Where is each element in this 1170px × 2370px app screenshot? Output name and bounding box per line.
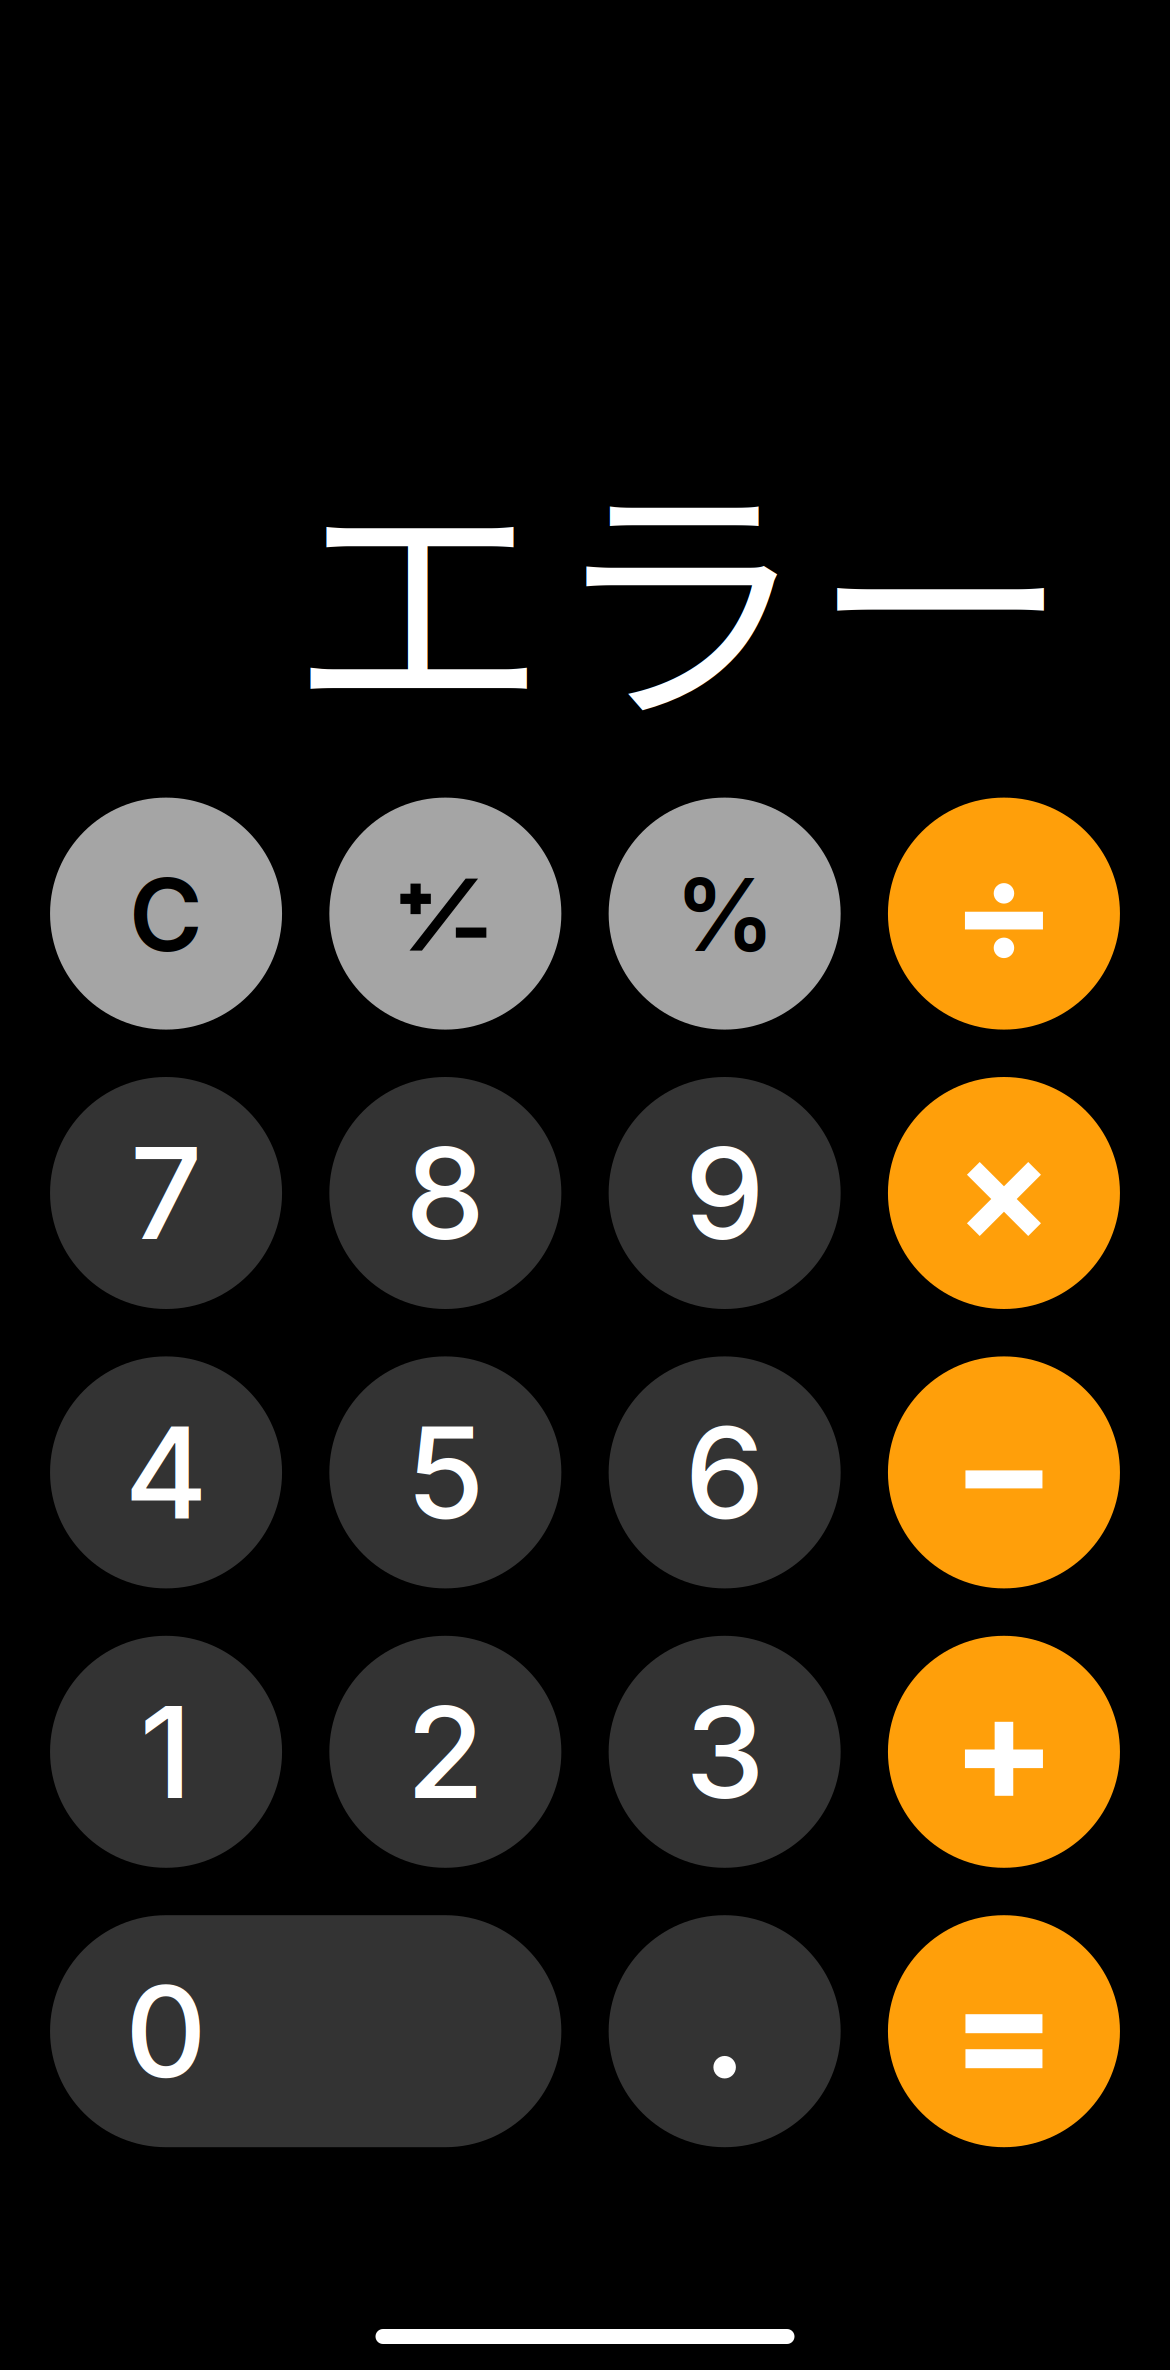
button[interactable]: 4 <box>50 1356 282 1588</box>
button[interactable]: Equals <box>888 1915 1120 2147</box>
button[interactable]: Plus minus <box>329 798 561 1030</box>
staticText: 6 <box>685 1396 765 1549</box>
button[interactable]: 2 <box>329 1636 561 1868</box>
staticText: 1 <box>139 1675 192 1828</box>
button[interactable]: 5 <box>329 1356 561 1588</box>
button[interactable]: Minus <box>888 1356 1120 1588</box>
button[interactable]: Divide <box>888 798 1120 1030</box>
button[interactable]: Decimal point <box>609 1915 841 2147</box>
button[interactable]: 9 <box>609 1077 841 1309</box>
staticText: % <box>675 854 775 975</box>
staticText: 9 <box>685 1116 765 1270</box>
button[interactable]: Percent <box>609 798 841 1030</box>
staticText: 4 <box>124 1396 207 1549</box>
button[interactable]: 0 <box>50 1915 561 2147</box>
button[interactable]: 1 <box>50 1636 282 1868</box>
button[interactable]: Clear <box>50 798 282 1030</box>
button[interactable]: 8 <box>329 1077 561 1309</box>
staticText: 8 <box>405 1116 485 1270</box>
button[interactable]: 7 <box>50 1077 282 1309</box>
staticText: 7 <box>130 1116 202 1270</box>
staticText: 2 <box>406 1675 484 1828</box>
button[interactable]: 6 <box>609 1356 841 1588</box>
button[interactable]: Multiply <box>888 1077 1120 1309</box>
button[interactable]: Plus <box>888 1636 1120 1868</box>
staticText: C <box>129 854 203 975</box>
staticText: エラー <box>288 397 1071 775</box>
staticText: 5 <box>406 1396 484 1549</box>
staticText: 3 <box>685 1675 764 1828</box>
button[interactable]: 3 <box>609 1636 841 1868</box>
staticText: 0 <box>125 1955 207 2108</box>
